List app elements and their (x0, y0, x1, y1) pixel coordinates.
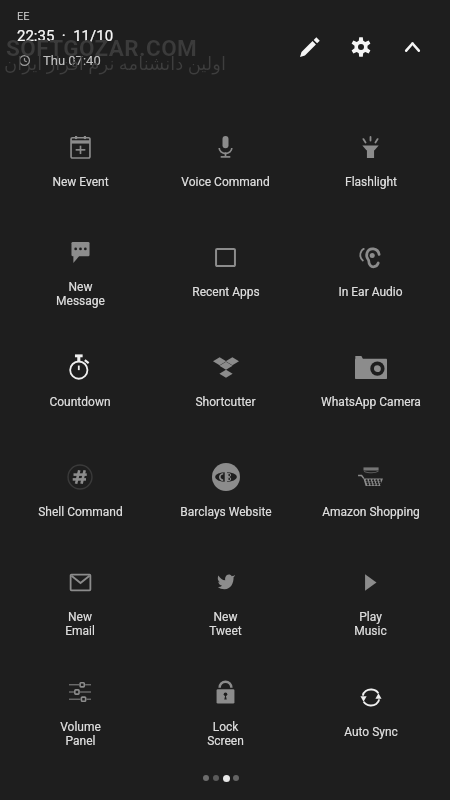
staticText: Shortcutter (195, 395, 256, 409)
staticText: Thu 07:40 (43, 53, 101, 68)
staticText: 22:35 · 11/10 (17, 27, 114, 45)
staticText: Flashlight (345, 175, 397, 189)
button[interactable]: Play Music (298, 549, 443, 659)
button[interactable]: Barclays Website (153, 437, 298, 547)
staticText: EE (17, 10, 30, 23)
staticText: WhatsApp Camera (321, 395, 421, 409)
button[interactable]: Volume Panel (7, 659, 153, 769)
staticText: Lock Screen (207, 720, 244, 748)
staticText: Recent Apps (192, 285, 260, 299)
staticText: Volume Panel (60, 720, 101, 748)
staticText: New Email (65, 610, 95, 638)
button[interactable]: New Email (7, 549, 153, 659)
staticText: New Message (56, 280, 105, 308)
staticText: In Ear Audio (338, 285, 403, 299)
button[interactable]: Voice Command (153, 107, 298, 217)
button[interactable]: WhatsApp Camera (298, 327, 443, 437)
staticText: Auto Sync (344, 725, 398, 739)
button[interactable]: New Event (7, 107, 153, 217)
staticText: New Event (52, 175, 109, 189)
button[interactable]: New Tweet (153, 549, 298, 659)
button[interactable]: New Message (7, 219, 153, 329)
staticText: Shell Command (38, 505, 123, 519)
staticText: اولین دانشنامه نرم افزار ایران (4, 53, 226, 74)
button[interactable]: Lock Screen (153, 659, 298, 769)
staticText: Barclays Website (180, 505, 272, 519)
button[interactable]: Countdown (7, 327, 153, 437)
button[interactable]: Shell Command (7, 437, 153, 547)
button[interactable]: In Ear Audio (298, 217, 443, 327)
button[interactable]: Edit (292, 30, 326, 64)
staticText: Play Music (354, 610, 387, 638)
button[interactable]: Auto Sync (298, 657, 443, 767)
staticText: New Tweet (209, 610, 242, 638)
staticText: Amazon Shopping (322, 505, 420, 519)
staticText: SOFTGOZAR.COM (6, 35, 198, 61)
button[interactable]: Settings (344, 30, 378, 64)
button[interactable]: Recent Apps (153, 217, 298, 327)
button[interactable]: Shortcutter (153, 327, 298, 437)
staticText: Voice Command (181, 175, 270, 189)
button[interactable]: Flashlight (298, 107, 443, 217)
button[interactable]: Amazon Shopping (298, 437, 443, 547)
staticText: Countdown (49, 395, 111, 409)
button[interactable]: Collapse (395, 29, 429, 63)
